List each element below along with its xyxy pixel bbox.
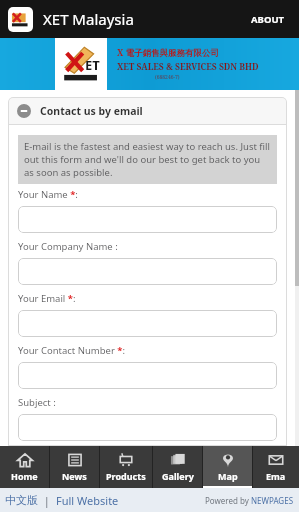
staticText: Ema [266,470,286,482]
staticText: 中文版 [5,493,38,507]
staticText: News [62,470,87,482]
staticText: Your Contact Number *: [18,344,126,357]
staticText: | [38,493,56,508]
button[interactable]: Map [203,446,252,488]
button[interactable]: ET [0,38,299,90]
button[interactable]: Home [0,446,49,488]
button[interactable] [18,310,277,337]
staticText: E-mail is the fastest and easiest way to… [24,140,271,179]
staticText: ABOUT [251,13,285,26]
other: Collapse section [17,104,31,118]
staticText: XET Malaysia [43,9,134,29]
button[interactable]: ABOUT [245,7,291,32]
staticText: Contact us by email [40,104,143,118]
staticText: Home [11,470,38,482]
button[interactable]: Ema [253,446,299,488]
button[interactable] [18,206,277,233]
staticText: Powered by [205,495,251,506]
staticText: Your Name *: [18,188,78,201]
staticText: Full Website [56,493,119,508]
staticText: Products [106,470,146,482]
button[interactable] [18,414,277,441]
staticText: Subject : [18,396,56,409]
staticText: ET [85,56,100,74]
staticText: XET SALES & SERVICES SDN BHD [117,61,259,73]
button[interactable]: Collapse section [8,97,287,124]
button[interactable]: News [50,446,99,488]
staticText: Your Email *: [18,292,76,305]
button[interactable]: Products [100,446,152,488]
button[interactable]: Gallery [153,446,202,488]
button[interactable]: 中文版 [5,493,38,507]
staticText: (688246-7) [155,74,180,81]
staticText: Your Company Name : [18,240,118,253]
staticText: NEWPAGES [251,495,294,506]
staticText: Map [218,470,238,482]
staticText: Gallery [162,470,194,482]
button[interactable] [18,258,277,285]
staticText: X 電子銷售與服務有限公司 [117,47,219,59]
button[interactable] [18,362,277,389]
button[interactable]: Full Website [56,493,119,508]
